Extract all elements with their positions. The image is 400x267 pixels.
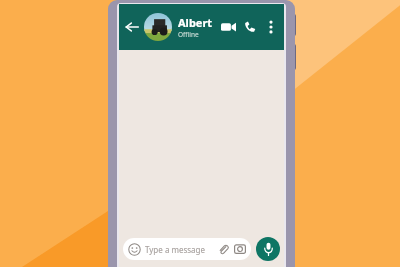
staticText: Offline: [178, 30, 199, 39]
button[interactable]: Back: [121, 16, 143, 38]
staticText: Type a message: [145, 244, 206, 255]
button[interactable]: Emoji: [123, 238, 251, 260]
staticText: Albert: [178, 15, 213, 30]
button[interactable]: Record voice message: [256, 237, 280, 261]
button[interactable]: Voice call: [240, 17, 260, 37]
button[interactable]: Video call: [218, 17, 238, 37]
button[interactable]: Emoji: [127, 242, 142, 257]
button[interactable]: Contact photo: [144, 13, 172, 41]
button[interactable]: More options: [262, 18, 280, 36]
button[interactable]: Camera: [233, 242, 247, 256]
button[interactable]: Attach: [216, 242, 230, 256]
button[interactable]: Albert: [178, 15, 218, 39]
